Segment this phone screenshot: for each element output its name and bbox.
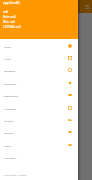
staticText: Sito: null [3, 20, 15, 24]
button[interactable]: Ordini [0, 139, 78, 151]
staticText: Documenti [4, 82, 17, 85]
staticText: Fornitori [4, 119, 14, 122]
staticText: Note legali e Privacy [4, 173, 27, 176]
staticText: Ente: null [3, 15, 16, 19]
button[interactable]: Fornitori [0, 114, 78, 126]
staticText: Ordini [4, 144, 11, 147]
staticText: Domande [4, 69, 16, 72]
button[interactable]: Contabilità [0, 102, 78, 114]
button[interactable]: Documenti [0, 77, 78, 89]
staticText: CF/P.IVA: null [3, 25, 21, 29]
staticText: Valutazioni [4, 156, 17, 159]
button[interactable]: Menu [82, 2, 91, 11]
staticText: Segnalazioni [4, 94, 19, 97]
staticText: Home [4, 45, 11, 48]
button[interactable]: Segnalazioni [0, 89, 78, 101]
button[interactable]: Valutazioni [0, 151, 78, 163]
staticText: Novità [4, 57, 12, 60]
button[interactable]: Home [0, 40, 78, 52]
staticText: app ComID [3, 1, 20, 5]
button[interactable]: Domande [0, 64, 78, 76]
staticText: Bacheca [4, 131, 14, 134]
button[interactable]: Bacheca [0, 126, 78, 138]
staticText: Contabilità [4, 107, 17, 110]
button[interactable]: Novità [0, 52, 78, 64]
staticText: null [3, 10, 9, 14]
